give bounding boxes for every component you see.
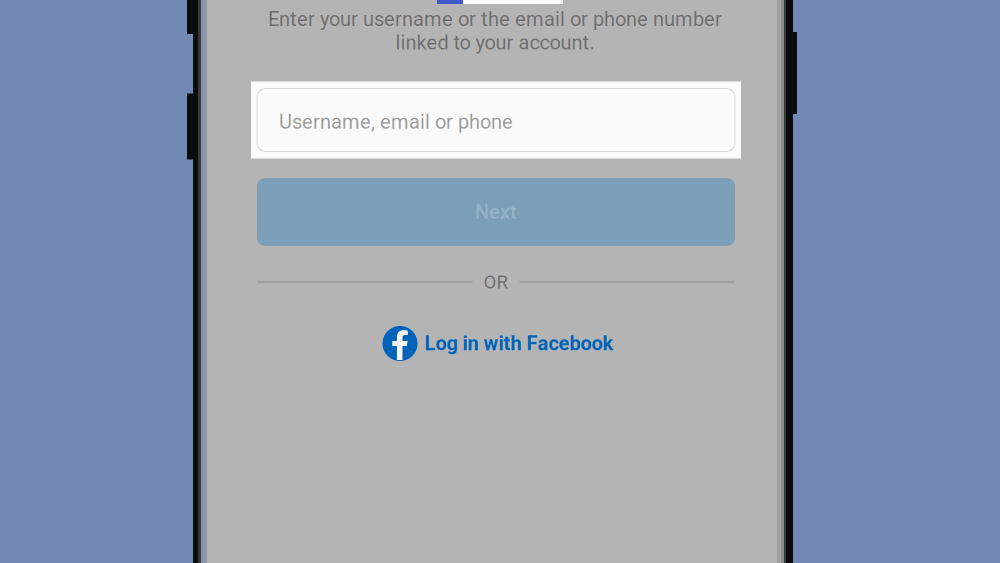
button[interactable]: Log in with Facebook: [382, 323, 613, 363]
staticText: linked to your account.: [395, 31, 594, 54]
staticText: Username, email or phone: [279, 110, 513, 134]
staticText: Enter your username or the email or phon…: [268, 8, 722, 31]
button[interactable]: Username, email or phone: [251, 81, 741, 158]
staticText: OR: [483, 271, 508, 293]
staticText: Log in with Facebook: [424, 332, 613, 355]
staticText: Next: [475, 200, 517, 224]
